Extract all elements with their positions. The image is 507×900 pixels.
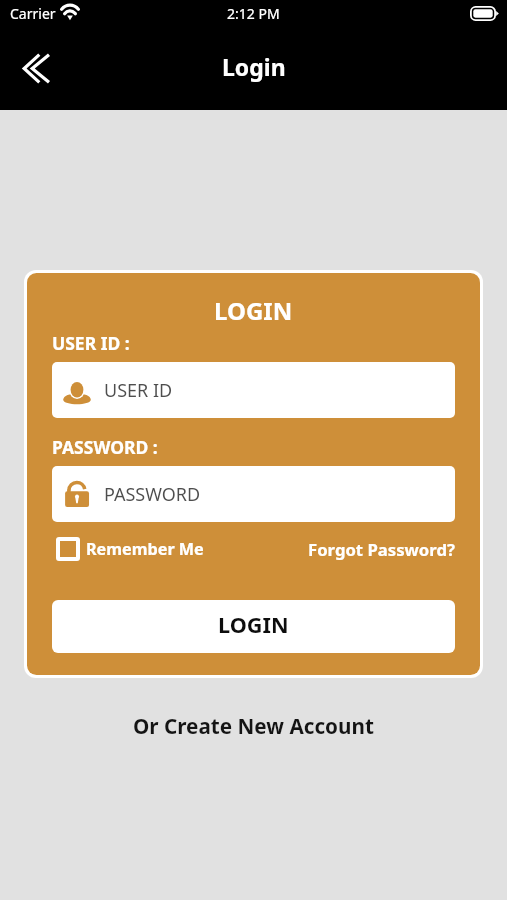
staticText: Or Create New Account — [133, 712, 374, 740]
staticText: Forgot Password? — [308, 538, 455, 561]
staticText: PASSWORD — [104, 482, 201, 507]
button[interactable]: Forgot Password? — [308, 534, 455, 565]
button[interactable]: USER ID — [52, 362, 455, 418]
button[interactable]: LOGIN — [52, 600, 455, 653]
staticText: Carrier — [10, 4, 56, 23]
button[interactable]: Remember Me — [56, 534, 204, 564]
staticText: Remember Me — [86, 538, 204, 560]
staticText: USER ID — [104, 378, 173, 403]
staticText: LOGIN — [218, 610, 289, 640]
staticText: Login — [222, 51, 286, 82]
button[interactable]: PASSWORD — [52, 466, 455, 522]
button[interactable]: Or Create New Account — [121, 707, 386, 745]
staticText: 2:12 PM — [227, 4, 280, 23]
staticText: PASSWORD : — [52, 435, 158, 459]
staticText: LOGIN — [214, 294, 293, 327]
button[interactable]: Back — [4, 43, 64, 93]
staticText: USER ID : — [52, 331, 130, 355]
